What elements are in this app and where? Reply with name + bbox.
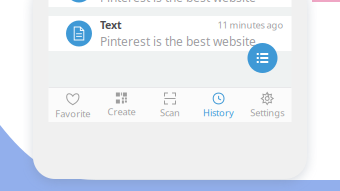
staticText: History (203, 106, 234, 119)
staticText: Favorite (55, 107, 90, 120)
staticText: Pinterest is the best website (100, 0, 256, 5)
staticText: Text (100, 18, 122, 32)
button[interactable]: Scan (146, 87, 194, 122)
button[interactable]: Text (48, 0, 291, 7)
staticText: Create (107, 105, 135, 118)
button[interactable]: History (194, 87, 243, 122)
button[interactable]: New list (247, 43, 277, 73)
button[interactable]: Settings (243, 87, 291, 122)
staticText: Pinterest is the best website (100, 33, 256, 49)
button[interactable]: Create (97, 87, 146, 122)
button[interactable]: Text (48, 16, 291, 51)
staticText: 11 minutes ago (217, 19, 283, 31)
staticText: Settings (250, 106, 284, 119)
button[interactable]: Favorite (48, 87, 97, 122)
staticText: Scan (160, 106, 180, 119)
